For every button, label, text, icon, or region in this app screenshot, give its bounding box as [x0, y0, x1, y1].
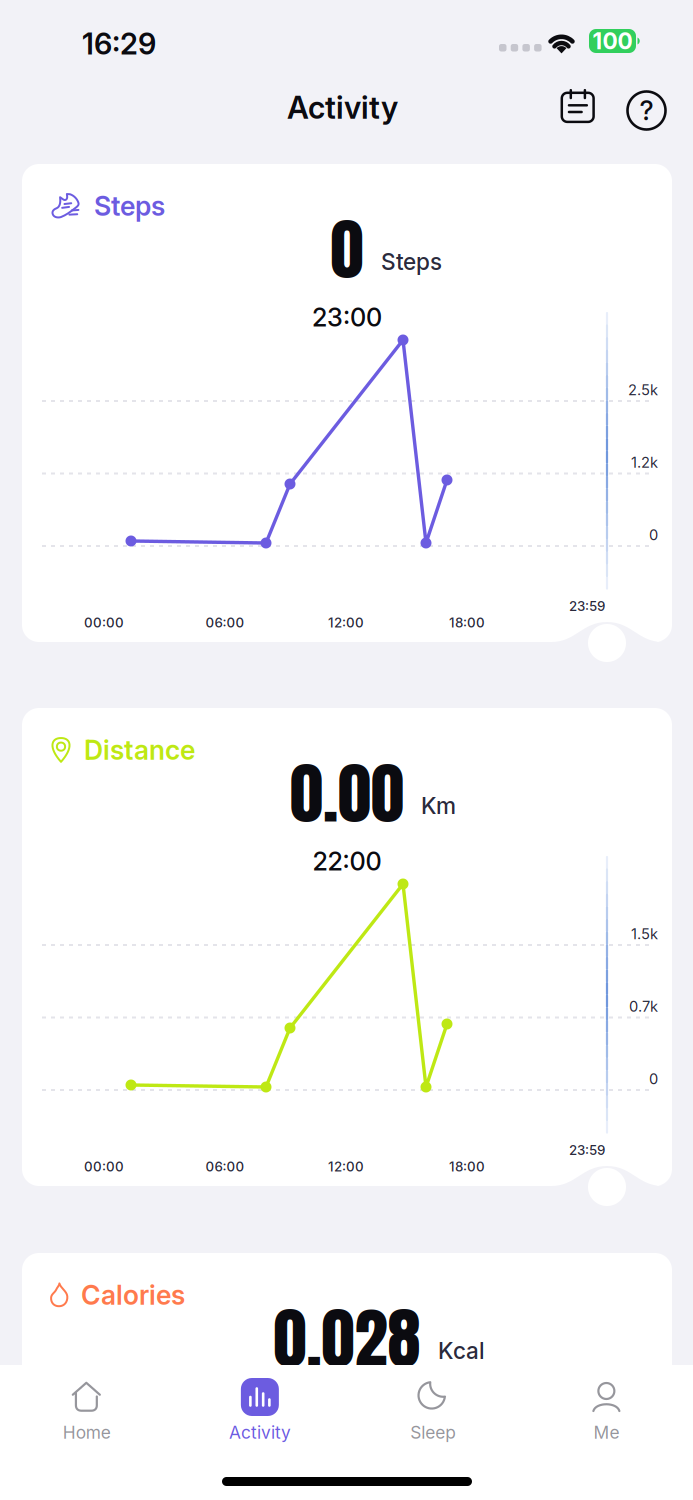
staticText: Calories: [81, 1279, 185, 1311]
staticText: 2.5k: [628, 381, 658, 399]
staticText: 0: [649, 1070, 658, 1088]
staticText: 0: [649, 526, 658, 544]
staticText: 22:00: [312, 846, 381, 877]
staticText: Activity: [229, 1422, 291, 1443]
staticText: 1.2k: [631, 453, 658, 471]
button[interactable]: Home: [0, 1365, 173, 1465]
staticText: ?: [639, 94, 653, 127]
button[interactable]: Me: [520, 1365, 693, 1465]
staticText: 1.5k: [631, 925, 658, 943]
staticText: Activity: [287, 89, 398, 126]
staticText: Distance: [84, 734, 195, 766]
staticText: 16:29: [82, 26, 156, 61]
staticText: Steps: [94, 190, 165, 222]
button[interactable]: Help: [624, 88, 669, 133]
staticText: 18:00: [449, 1158, 485, 1175]
staticText: 0: [330, 199, 363, 299]
staticText: 06:00: [205, 614, 244, 631]
button[interactable]: Activity: [173, 1365, 346, 1465]
staticText: 0.00: [290, 743, 404, 843]
staticText: 00:00: [84, 614, 124, 631]
staticText: 0.7k: [629, 997, 658, 1015]
staticText: Sleep: [410, 1422, 456, 1443]
staticText: Km: [421, 792, 456, 819]
staticText: 23:00: [312, 302, 382, 333]
staticText: 23:59: [569, 1142, 605, 1158]
staticText: 12:00: [328, 614, 364, 631]
staticText: 00:00: [84, 1158, 124, 1175]
staticText: 23:59: [569, 598, 605, 614]
staticText: 0.028: [273, 1288, 420, 1388]
staticText: 18:00: [449, 614, 485, 631]
staticText: Steps: [381, 248, 442, 275]
staticText: 100: [592, 27, 632, 55]
staticText: 06:00: [205, 1158, 244, 1175]
staticText: Home: [63, 1422, 111, 1443]
staticText: 12:00: [328, 1158, 364, 1175]
button[interactable]: Reports: [556, 87, 601, 132]
button[interactable]: Sleep: [346, 1365, 520, 1465]
staticText: Kcal: [438, 1337, 485, 1364]
staticText: Me: [593, 1422, 619, 1443]
